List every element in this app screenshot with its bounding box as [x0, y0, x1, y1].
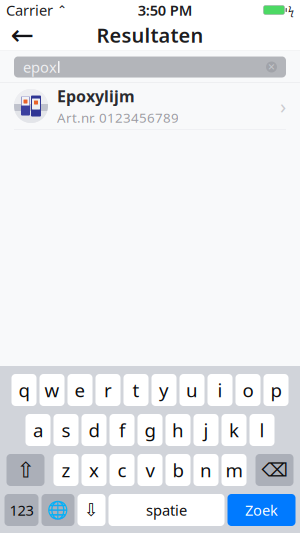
staticText: n: [200, 458, 212, 482]
button[interactable]: g: [137, 414, 162, 446]
staticText: z: [61, 458, 70, 482]
button[interactable]: w: [39, 374, 64, 406]
button[interactable]: n: [193, 454, 218, 486]
staticText: ⇩: [84, 500, 99, 520]
button[interactable]: h: [165, 414, 190, 446]
button[interactable]: v: [137, 454, 162, 486]
button[interactable]: y: [151, 374, 176, 406]
button[interactable]: Back: [0, 20, 44, 50]
button[interactable]: c: [109, 454, 134, 486]
staticText: p: [270, 378, 281, 402]
staticText: ⇧: [16, 458, 34, 482]
button[interactable]: i: [207, 374, 232, 406]
button[interactable]: d: [81, 414, 106, 446]
button[interactable]: r: [95, 374, 120, 406]
staticText: s: [61, 418, 70, 442]
staticText: y: [159, 378, 169, 402]
staticText: Resultaten: [96, 22, 203, 48]
staticText: ⌃: [53, 3, 67, 17]
button[interactable]: q: [11, 374, 36, 406]
staticText: Art.nr. 0123456789: [57, 109, 179, 126]
button[interactable]: spatie: [108, 494, 224, 526]
button[interactable]: s: [53, 414, 78, 446]
staticText: Carrier: [6, 0, 53, 20]
button[interactable]: Zoek: [227, 494, 295, 526]
staticText: e: [74, 378, 85, 402]
button[interactable]: j: [193, 414, 218, 446]
button[interactable]: k: [221, 414, 246, 446]
staticText: 🌐: [47, 500, 69, 520]
staticText: 123: [9, 500, 33, 520]
staticText: spatie: [146, 500, 187, 520]
button[interactable]: x: [81, 454, 106, 486]
staticText: ←: [10, 19, 33, 51]
staticText: ϟ: [288, 3, 294, 17]
staticText: epox: [23, 57, 57, 77]
button[interactable]: t: [123, 374, 148, 406]
staticText: 3:50 PM: [138, 0, 193, 20]
staticText: o: [242, 378, 253, 402]
staticText: j: [203, 418, 208, 442]
staticText: m: [225, 458, 242, 482]
button[interactable]: p: [263, 374, 288, 406]
staticText: Zoek: [245, 500, 278, 520]
staticText: k: [229, 418, 239, 442]
button[interactable]: z: [53, 454, 78, 486]
staticText: f: [119, 418, 125, 442]
button[interactable]: b: [165, 454, 190, 486]
staticText: r: [104, 378, 112, 402]
button[interactable]: o: [235, 374, 260, 406]
staticText: i: [217, 378, 222, 402]
staticText: w: [44, 378, 59, 402]
staticText: Epoxylijm: [57, 85, 135, 107]
staticText: q: [18, 378, 29, 402]
button[interactable]: Shift: [6, 454, 44, 486]
staticText: c: [117, 458, 126, 482]
button[interactable]: u: [179, 374, 204, 406]
staticText: ✕: [267, 62, 275, 72]
button[interactable]: Search field: [14, 56, 286, 77]
staticText: ⌫: [261, 459, 287, 481]
staticText: ›: [280, 93, 286, 119]
button[interactable]: Numbers: [4, 494, 38, 526]
button[interactable]: Epoxylijm: [0, 83, 300, 130]
staticText: v: [145, 458, 154, 482]
staticText: t: [132, 378, 139, 402]
button[interactable]: Dictation: [77, 494, 105, 526]
button[interactable]: f: [109, 414, 134, 446]
staticText: l: [259, 418, 264, 442]
button[interactable]: l: [249, 414, 274, 446]
button[interactable]: m: [221, 454, 246, 486]
staticText: b: [172, 458, 183, 482]
staticText: x: [89, 458, 99, 482]
staticText: a: [33, 418, 43, 442]
staticText: u: [186, 378, 198, 402]
button[interactable]: a: [25, 414, 50, 446]
button[interactable]: Next keyboard: [41, 494, 74, 526]
staticText: g: [144, 418, 155, 442]
staticText: h: [172, 418, 184, 442]
staticText: d: [88, 418, 99, 442]
button[interactable]: Delete: [255, 454, 293, 486]
button[interactable]: e: [67, 374, 92, 406]
